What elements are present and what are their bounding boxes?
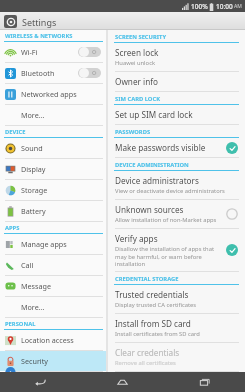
button[interactable]: Manage apps	[0, 234, 106, 254]
staticText: APPS	[5, 224, 20, 232]
button[interactable]: Screen lock	[108, 43, 245, 71]
staticText: SCREEN SECURITY	[115, 33, 167, 41]
staticText: PERSONAL	[5, 320, 36, 328]
staticText: Device administrators	[115, 175, 199, 186]
staticText: View or deactivate device administrators	[115, 187, 225, 195]
staticText: Install certificates from SD card	[115, 330, 200, 338]
button[interactable]: Battery	[0, 201, 106, 221]
staticText: CREDENTIAL STORAGE	[115, 275, 179, 283]
staticText: Call	[21, 260, 106, 270]
staticText: Make passwords visible	[115, 142, 206, 153]
button[interactable]: Device administrators	[108, 171, 245, 199]
staticText: Networked apps	[21, 89, 106, 99]
staticText: Battery	[21, 206, 106, 216]
button[interactable]: Enabled	[226, 244, 238, 256]
button[interactable]: Home	[81, 372, 163, 392]
staticText: Storage	[21, 185, 106, 195]
staticText: Display	[21, 164, 106, 174]
button[interactable]: Sound	[0, 138, 106, 158]
button[interactable]: Call	[0, 255, 106, 275]
staticText: Remove all certificates	[115, 359, 176, 367]
staticText: Clear credentials	[115, 347, 180, 358]
staticText: Unknown sources	[115, 204, 184, 215]
button[interactable]: Disabled	[226, 208, 238, 220]
staticText: Settings	[22, 16, 57, 28]
staticText: Screen lock	[115, 47, 159, 58]
button[interactable]: Make passwords visible	[108, 138, 245, 157]
staticText: 100%	[191, 2, 208, 11]
button[interactable]: Unknown sources	[108, 200, 245, 228]
staticText: Trusted credentials	[115, 289, 189, 300]
button[interactable]	[78, 47, 101, 57]
button[interactable]: Networked apps	[0, 84, 106, 104]
staticText: Owner info	[115, 76, 158, 87]
staticText: Set up SIM card lock	[115, 109, 193, 120]
staticText: Wi-Fi	[21, 47, 78, 57]
staticText: Install from SD card	[115, 318, 191, 329]
button[interactable]: More...	[0, 105, 106, 125]
staticText: Display trusted CA certificates	[115, 301, 197, 309]
staticText: More...	[21, 110, 106, 120]
staticText: DEVICE	[5, 128, 26, 136]
staticText: PASSWORDS	[115, 128, 151, 136]
button[interactable]: Security	[0, 351, 106, 371]
staticText: 10:00	[216, 2, 233, 11]
button[interactable]: Clear credentials	[108, 343, 245, 371]
staticText: Disallow the installation of apps that m…	[115, 245, 222, 267]
button[interactable]	[78, 68, 101, 78]
button[interactable]: Wi-Fi	[0, 42, 106, 62]
button[interactable]: More...	[0, 297, 106, 317]
staticText: Security	[21, 356, 106, 366]
button[interactable]: Verify apps	[108, 229, 245, 271]
button[interactable]: Settings	[0, 12, 245, 30]
staticText: Sound	[21, 143, 106, 153]
button[interactable]: Recents	[163, 372, 245, 392]
staticText: AM	[234, 3, 242, 10]
button[interactable]: Trusted credentials	[108, 285, 245, 313]
staticText: Bluetooth	[21, 68, 78, 78]
staticText: DEVICE ADMINISTRATION	[115, 161, 189, 169]
staticText: WIRELESS & NETWORKS	[5, 32, 73, 40]
staticText: Manage apps	[21, 239, 106, 249]
staticText: SIM CARD LOCK	[115, 95, 160, 103]
staticText: Allow installation of non-Market apps	[115, 216, 217, 224]
staticText: Huawei unlock	[115, 59, 156, 67]
button[interactable]: Back	[0, 372, 81, 392]
button[interactable]: Owner info	[108, 72, 245, 91]
button[interactable]: Message	[0, 276, 106, 296]
staticText: Location access	[21, 335, 106, 345]
button[interactable]: Location access	[0, 330, 106, 350]
button[interactable]: Bluetooth	[0, 63, 106, 83]
staticText: Verify apps	[115, 233, 158, 244]
button[interactable]: Enabled	[226, 142, 238, 154]
staticText: Message	[21, 281, 106, 291]
staticText: More...	[21, 302, 106, 312]
button[interactable]: Storage	[0, 180, 106, 200]
button[interactable]: Install from SD card	[108, 314, 245, 342]
button[interactable]: Set up SIM card lock	[108, 105, 245, 124]
button[interactable]: Display	[0, 159, 106, 179]
